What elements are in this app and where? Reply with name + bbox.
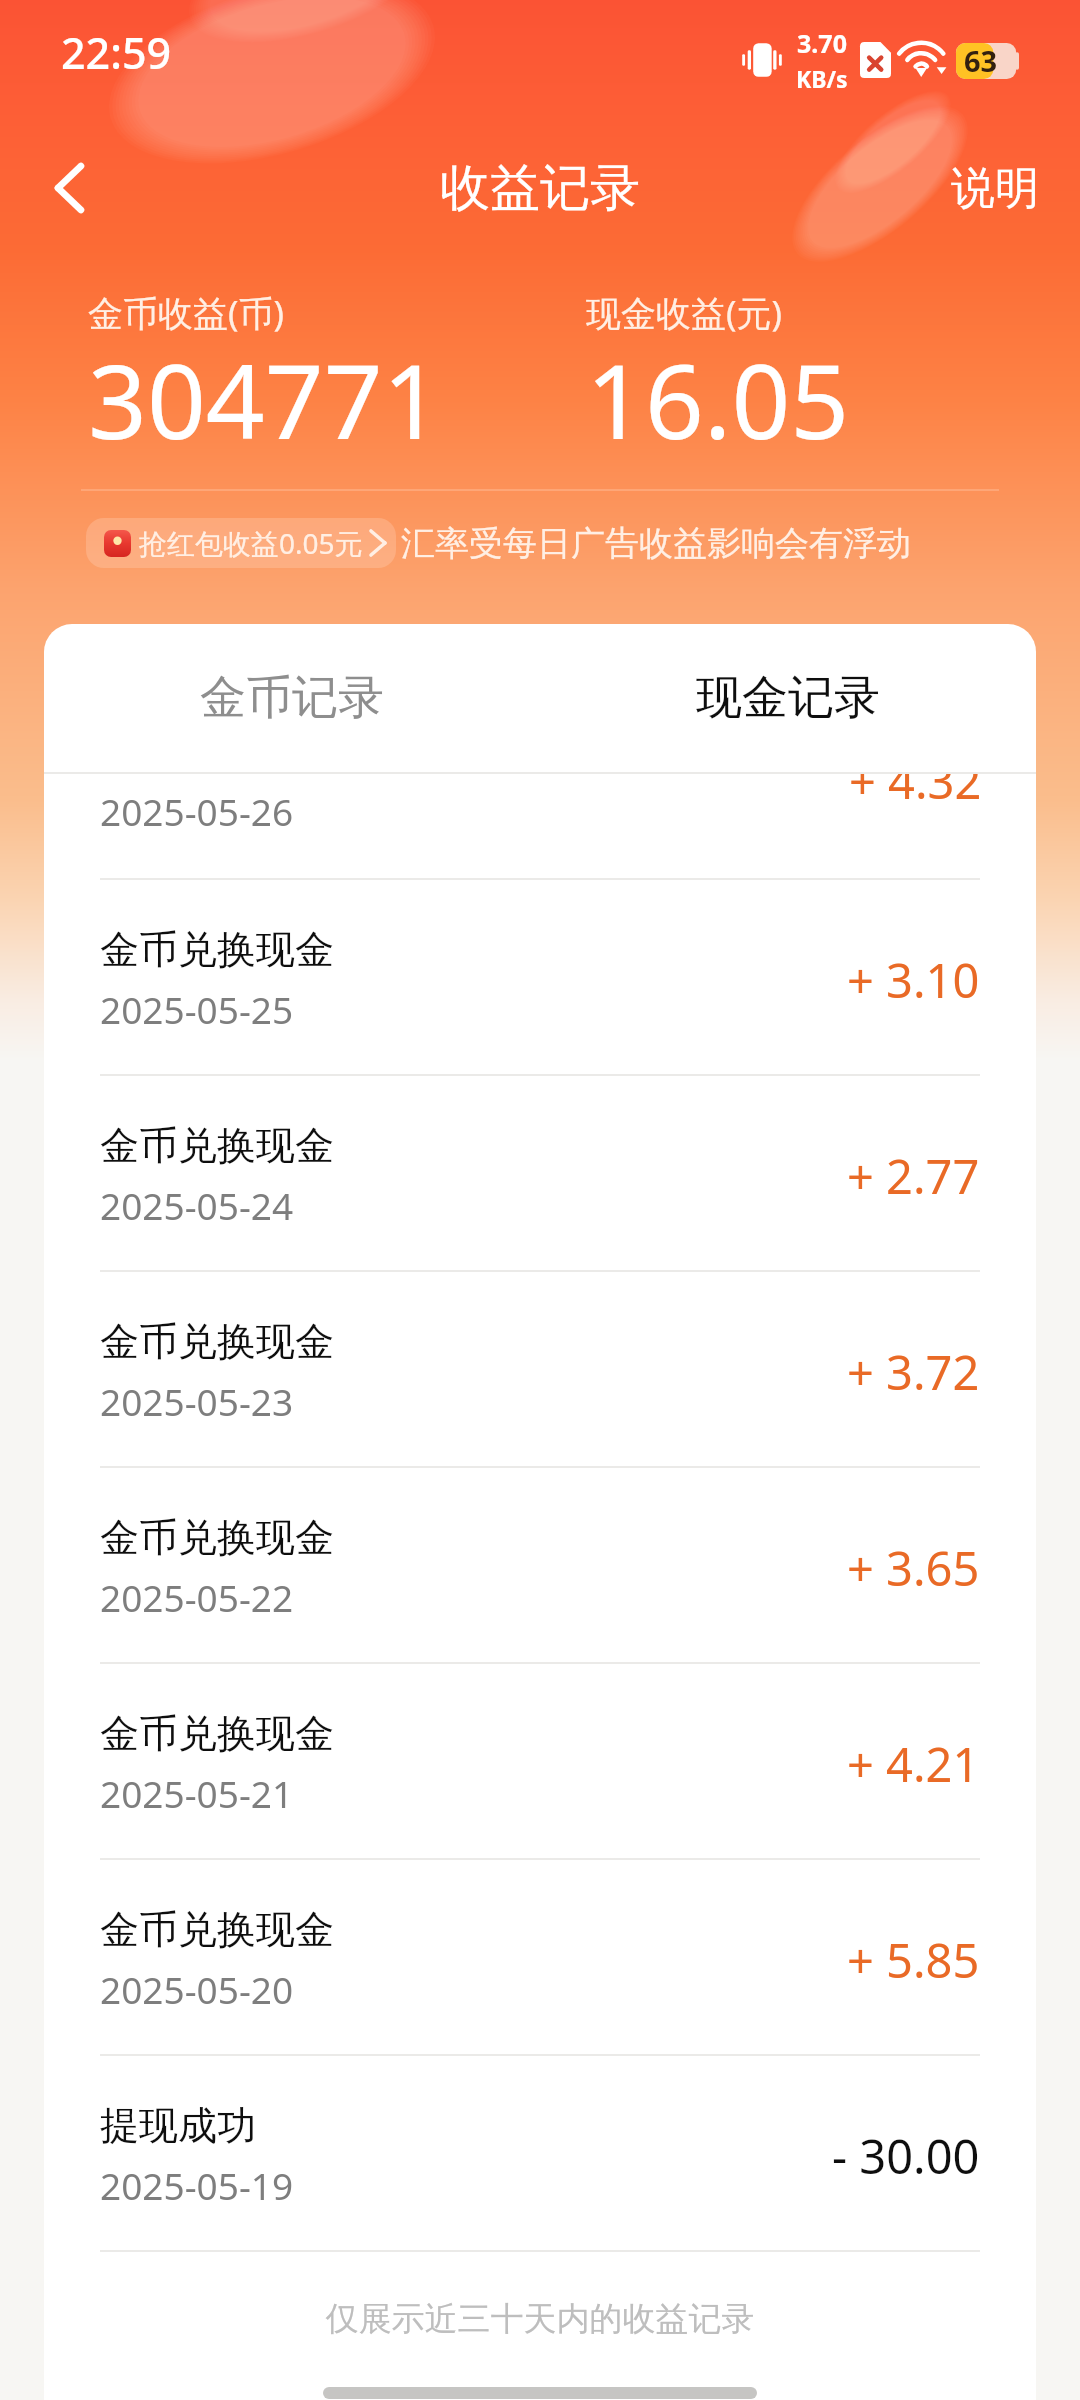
staticText: + 2.77	[847, 1144, 980, 1208]
staticText: 说明	[951, 161, 1039, 216]
button[interactable]: 金币兑换现金	[44, 1076, 1036, 1270]
staticText: + 3.10	[847, 948, 980, 1012]
staticText: 金币收益(币)	[88, 289, 285, 337]
staticText: 汇率受每日广告收益影响会有浮动	[401, 522, 911, 565]
button[interactable]: 抢红包收益0.05元	[86, 518, 396, 568]
button[interactable]: + 4.32	[44, 774, 1036, 878]
staticText: 2025-05-21	[100, 1768, 294, 1818]
button[interactable]: 金币兑换现金	[44, 1664, 1036, 1858]
staticText: 22:59	[61, 23, 172, 82]
staticText: 304771	[88, 329, 442, 469]
button[interactable]: 提现成功	[44, 2056, 1036, 2250]
staticText: 金币兑换现金	[100, 1317, 334, 1366]
staticText: KB/s	[796, 63, 848, 94]
staticText: 现金记录	[696, 669, 880, 727]
button[interactable]: 金币兑换现金	[44, 1468, 1036, 1662]
staticText: 收益记录	[440, 157, 640, 220]
staticText: + 3.65	[847, 1536, 980, 1600]
staticText: + 4.32	[849, 774, 982, 813]
staticText: + 5.85	[847, 1928, 980, 1992]
button[interactable]: 现金记录	[540, 624, 1036, 772]
button[interactable]: 金币记录	[44, 624, 540, 772]
staticText: 2025-05-20	[100, 1964, 294, 2014]
staticText: 2025-05-22	[100, 1572, 294, 1622]
button[interactable]: 金币兑换现金	[44, 1272, 1036, 1466]
staticText: 63	[964, 41, 998, 80]
staticText: 金币兑换现金	[100, 1121, 334, 1170]
button[interactable]: 说明	[906, 133, 1080, 244]
staticText: 2025-05-26	[100, 786, 294, 836]
staticText: 抢红包收益0.05元	[139, 524, 363, 562]
staticText: 2025-05-25	[100, 984, 294, 1034]
staticText: 金币兑换现金	[100, 1905, 334, 1954]
staticText: 16.05	[586, 329, 850, 469]
staticText: 2025-05-24	[100, 1180, 294, 1230]
staticText: + 3.72	[847, 1340, 980, 1404]
button[interactable]: 金币兑换现金	[44, 1860, 1036, 2054]
staticText: 金币记录	[200, 669, 384, 727]
staticText: + 4.21	[847, 1732, 980, 1796]
button[interactable]: 返回	[10, 129, 128, 247]
staticText: 2025-05-19	[100, 2160, 294, 2210]
staticText: 金币兑换现金	[100, 925, 334, 974]
staticText: 现金收益(元)	[586, 289, 783, 337]
staticText: - 30.00	[832, 2124, 980, 2188]
button[interactable]: 金币兑换现金	[44, 880, 1036, 1074]
staticText: 2025-05-23	[100, 1376, 294, 1426]
staticText: 金币兑换现金	[100, 1709, 334, 1758]
staticText: 金币兑换现金	[100, 1513, 334, 1562]
staticText: 仅展示近三十天内的收益记录	[44, 2298, 1036, 2340]
staticText: 3.70	[797, 26, 847, 60]
staticText: 提现成功	[100, 2101, 256, 2150]
